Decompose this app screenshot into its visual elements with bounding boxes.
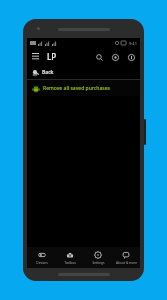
button[interactable]: Devices (27, 247, 56, 268)
button[interactable]: About & more (112, 247, 140, 268)
staticText: 9:41 (129, 41, 137, 46)
button[interactable]: Toolbox (56, 247, 84, 268)
button[interactable]: Info (123, 49, 139, 65)
button[interactable]: Menu (27, 48, 44, 65)
button[interactable]: Search (91, 49, 107, 65)
staticText: LP (47, 51, 57, 62)
button[interactable]: Back (27, 65, 140, 79)
button[interactable]: Settings (84, 247, 112, 268)
staticText: Remove all saved purchases (43, 85, 111, 92)
button[interactable]: Help (107, 49, 123, 65)
button[interactable]: Remove all saved purchases (27, 80, 140, 96)
staticText: Toolbox (64, 261, 76, 265)
staticText: About & more (116, 261, 137, 265)
staticText: Devices (36, 261, 48, 265)
staticText: Settings (92, 261, 105, 265)
staticText: Back (42, 69, 54, 76)
